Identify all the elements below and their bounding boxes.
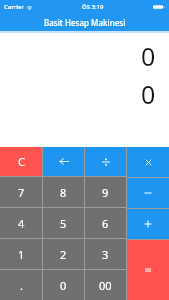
staticText: 00 [99, 278, 112, 293]
staticText: 1 [18, 247, 25, 262]
button[interactable]: Equals [127, 240, 169, 300]
button[interactable]: Backspace [43, 147, 84, 176]
staticText: Basit Hesap Makinesi [44, 17, 126, 28]
button[interactable]: Decimal point [0, 270, 42, 300]
button[interactable]: Plus [127, 209, 169, 239]
button[interactable]: 3 [85, 239, 126, 269]
staticText: 2 [60, 247, 67, 262]
staticText: 4 [18, 216, 25, 231]
button[interactable]: 2 [43, 239, 84, 269]
staticText: 9 [102, 185, 109, 200]
staticText: ÖS 3:19 [82, 3, 104, 11]
staticText: 0 [60, 278, 67, 293]
button[interactable]: 1 [0, 239, 42, 269]
staticText: 0 [141, 77, 156, 111]
button[interactable]: Minus [127, 178, 169, 208]
button[interactable]: Multiply [127, 147, 169, 177]
staticText: 5 [60, 216, 67, 231]
staticText: 6 [102, 216, 109, 231]
button[interactable]: 6 [85, 208, 126, 238]
button[interactable]: 5 [43, 208, 84, 238]
button[interactable]: 7 [0, 177, 42, 207]
button[interactable]: 4 [0, 208, 42, 238]
staticText: 0 [141, 39, 156, 73]
staticText: 7 [18, 185, 25, 200]
button[interactable]: 00 [85, 270, 126, 300]
staticText: Carrier [4, 3, 24, 11]
staticText: C [18, 154, 25, 169]
staticText: 3 [102, 247, 109, 262]
button[interactable]: 8 [43, 177, 84, 207]
button[interactable]: 0 [43, 270, 84, 300]
staticText: 8 [60, 185, 67, 200]
button[interactable]: C [0, 147, 42, 176]
staticText: . [20, 278, 23, 293]
button[interactable]: 9 [85, 177, 126, 207]
button[interactable]: Divide [85, 147, 126, 176]
